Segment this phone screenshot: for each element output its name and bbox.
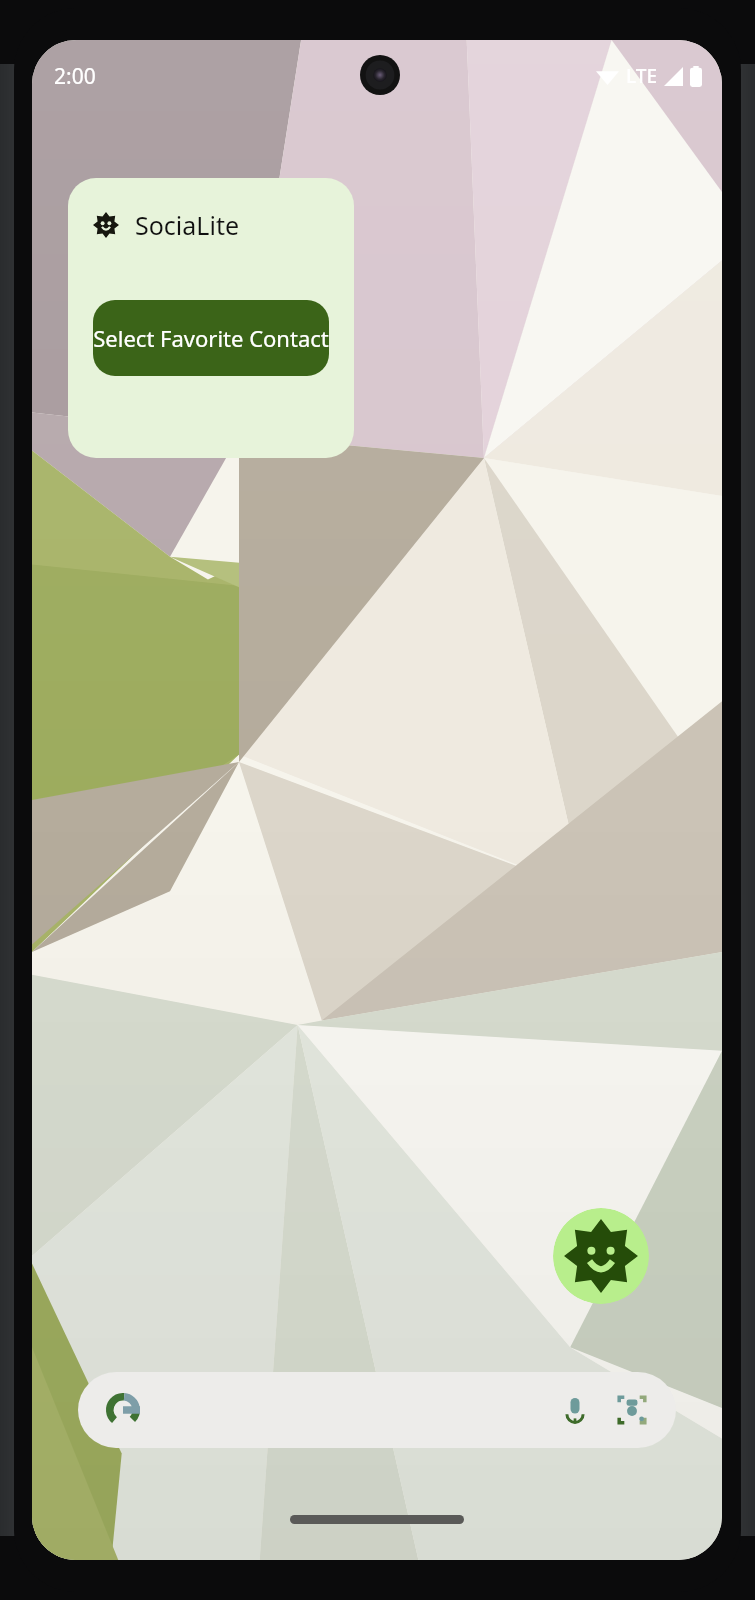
- other: Voice search: [560, 1395, 590, 1425]
- button[interactable]: Select Favorite Contact: [93, 300, 329, 376]
- button[interactable]: SociaLite: [68, 178, 354, 458]
- button[interactable]: SociaLite app: [553, 1208, 649, 1304]
- button[interactable]: Google Search: [78, 1372, 676, 1448]
- staticText: Select Favorite Contact: [93, 323, 329, 353]
- staticText: SociaLite: [135, 208, 240, 242]
- staticText: LTE: [626, 63, 658, 89]
- other: Google Lens: [616, 1394, 648, 1426]
- staticText: 2:00: [54, 62, 96, 91]
- other: Google Search: [106, 1393, 140, 1427]
